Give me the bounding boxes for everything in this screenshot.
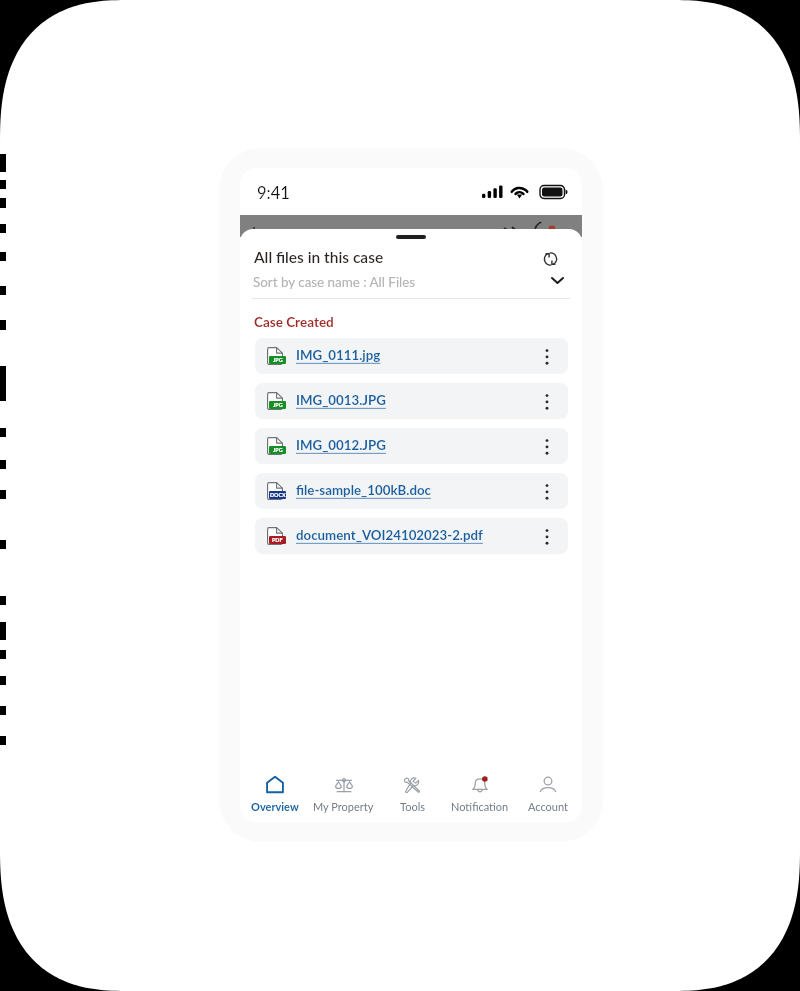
staticText: My Property	[313, 800, 374, 813]
staticText: JPG	[273, 357, 283, 363]
staticText: All files in this case	[254, 248, 384, 267]
button[interactable]: More options	[534, 524, 560, 550]
button[interactable]: More options	[534, 434, 560, 460]
button[interactable]: My Property	[309, 760, 378, 822]
staticText: IMG_0111.jpg	[296, 347, 381, 363]
staticText: IMG_0012.JPG	[296, 437, 386, 453]
button[interactable]: JPG	[255, 338, 568, 374]
staticText: Overview	[251, 800, 299, 813]
staticText: 9:41	[257, 183, 290, 203]
button[interactable]: More options	[534, 344, 560, 370]
staticText: Account	[528, 800, 568, 813]
button[interactable]: DOCX	[255, 473, 568, 509]
button[interactable]: JPG	[255, 428, 568, 464]
staticText: file-sample_100kB.doc	[296, 482, 431, 498]
staticText: Sort by case name : All Files	[253, 274, 416, 290]
button[interactable]: Overview	[240, 760, 309, 822]
button[interactable]: More options	[534, 479, 560, 505]
staticText: document_VOI24102023-2.pdf	[296, 527, 483, 543]
staticText: DOCX	[270, 492, 286, 498]
button[interactable]: Tools	[378, 760, 446, 822]
button[interactable]: Change sort order	[543, 266, 571, 294]
staticText: JPG	[273, 402, 283, 408]
button[interactable]: JPG	[255, 383, 568, 419]
staticText: Tools	[400, 800, 425, 813]
button[interactable]: Account	[514, 760, 582, 822]
staticText: Case Created	[254, 314, 334, 330]
staticText: PDF	[272, 537, 283, 543]
staticText: JPG	[273, 447, 283, 453]
staticText: Notification	[451, 800, 509, 813]
staticText: IMG_0013.JPG	[296, 392, 386, 408]
button[interactable]: PDF	[255, 518, 568, 554]
button[interactable]: Refresh	[536, 245, 564, 273]
button[interactable]: Notification	[446, 760, 514, 822]
button[interactable]: More options	[534, 389, 560, 415]
